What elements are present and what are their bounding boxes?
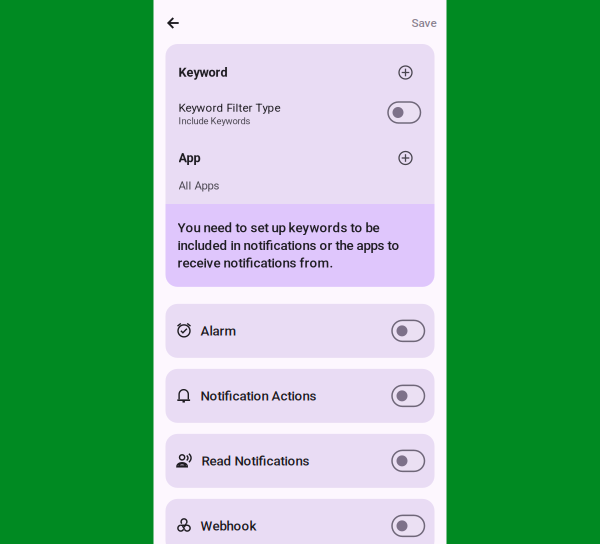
button[interactable]: Save xyxy=(403,6,444,38)
button[interactable]: Add app xyxy=(394,147,416,169)
staticText: Alarm xyxy=(200,323,236,339)
staticText: Read Notifications xyxy=(201,453,309,469)
staticText: Include Keywords xyxy=(178,116,250,126)
staticText: App xyxy=(178,151,200,165)
staticText: Keyword xyxy=(178,65,227,80)
button[interactable]: Notification Actions xyxy=(165,369,434,423)
staticText: Save xyxy=(411,16,436,30)
staticText: All Apps xyxy=(178,179,219,192)
button[interactable]: Alarm xyxy=(165,304,434,358)
staticText: Webhook xyxy=(200,518,256,534)
staticText: Notification Actions xyxy=(200,388,316,404)
staticText: You need to set up keywords to be includ… xyxy=(177,220,399,271)
button[interactable]: Webhook xyxy=(165,499,434,544)
button[interactable]: Back xyxy=(158,6,188,38)
button[interactable]: Read Notifications xyxy=(165,434,434,488)
staticText: Keyword Filter Type xyxy=(178,101,280,115)
button[interactable]: Add keyword xyxy=(394,61,416,83)
